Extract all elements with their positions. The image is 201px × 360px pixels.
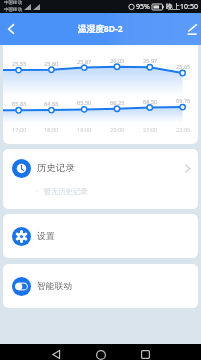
staticText: 19:00	[77, 126, 92, 134]
staticText: 95%	[136, 2, 150, 12]
staticText: 25.87	[77, 58, 92, 66]
button[interactable]: Back	[0, 13, 21, 45]
staticText: 25.60	[44, 60, 59, 68]
staticText: 22:00	[176, 126, 191, 134]
staticText: 历史记录	[37, 162, 75, 174]
button[interactable]: Home	[90, 349, 112, 360]
button[interactable]: Back	[45, 349, 67, 360]
staticText: 25.97	[143, 57, 158, 65]
staticText: 温湿度8D-2	[78, 23, 123, 35]
staticText: 20:00	[110, 126, 125, 134]
staticText: 68.50	[143, 98, 158, 106]
staticText: · 暂无历史记录	[36, 186, 88, 196]
button[interactable]: 智能联动	[3, 264, 198, 308]
staticText: 设置	[37, 231, 55, 242]
staticText: 65.50	[77, 99, 92, 107]
staticText: 65.83	[12, 100, 27, 108]
staticText: 智能联动	[37, 281, 73, 292]
button[interactable]: Recent apps	[134, 349, 156, 360]
button[interactable]: Edit	[182, 13, 201, 45]
button[interactable]: 设置	[3, 214, 198, 258]
button[interactable]: 历史记录	[3, 149, 198, 209]
staticText: 中国移动	[4, 0, 22, 6]
staticText: 晚上10:50	[166, 2, 198, 12]
staticText: 25.53	[12, 60, 27, 68]
staticText: 21:00	[143, 126, 158, 134]
staticText: 17:00	[12, 126, 27, 134]
staticText: 18:00	[44, 126, 59, 134]
staticText: 26.03	[110, 57, 125, 65]
staticText: 64.53	[44, 100, 59, 108]
staticText: 66.23	[110, 99, 125, 107]
staticText: 25.05	[176, 63, 191, 71]
staticText: 69.75	[176, 97, 191, 105]
staticText: 中国移动	[4, 7, 22, 13]
